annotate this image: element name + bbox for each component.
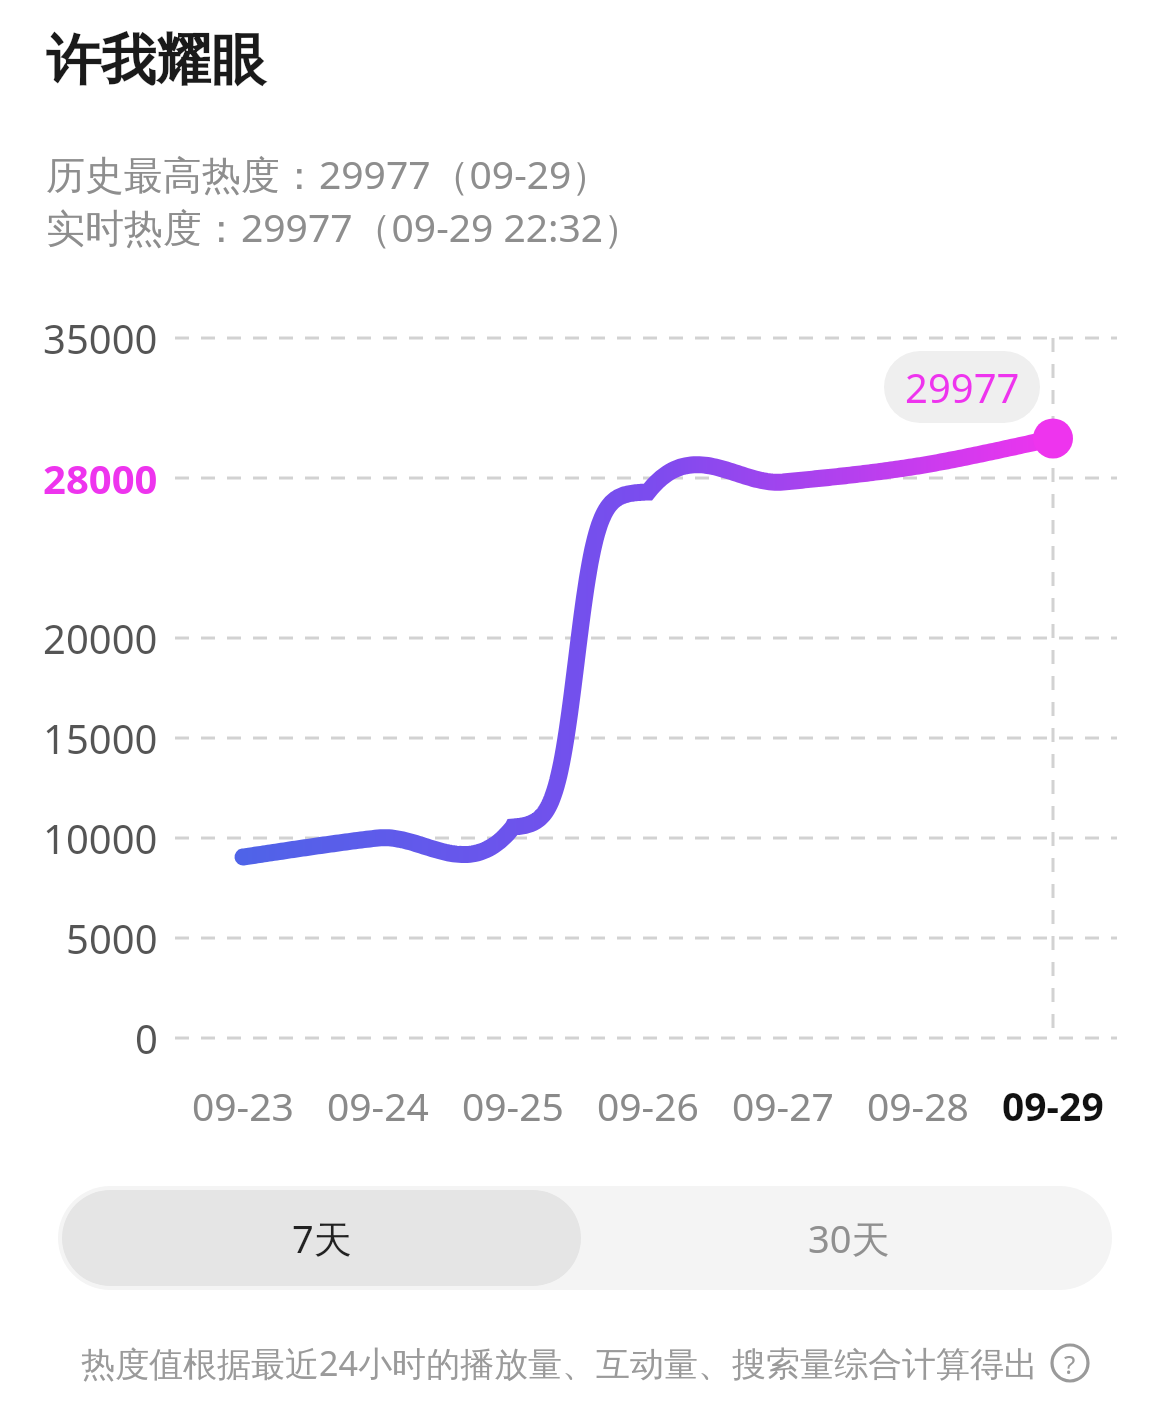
staticText: 0 <box>135 1011 158 1065</box>
staticText: 历史最高热度：29977（09-29） <box>46 147 611 200</box>
button[interactable]: 7天 <box>62 1190 581 1286</box>
staticText: 7天 <box>292 1212 352 1264</box>
button[interactable]: 说明 <box>1050 1343 1090 1383</box>
staticText: 28000 <box>43 451 158 505</box>
staticText: 5000 <box>66 911 158 965</box>
staticText: 09-29 <box>1002 1079 1104 1132</box>
staticText: 10000 <box>43 811 158 865</box>
staticText: 20000 <box>43 611 158 665</box>
staticText: ? <box>1064 1346 1076 1381</box>
staticText: 09-23 <box>192 1079 294 1132</box>
staticText: 30天 <box>808 1212 890 1264</box>
staticText: 许我耀眼 <box>46 26 266 95</box>
staticText: 09-28 <box>867 1079 969 1132</box>
staticText: 09-25 <box>462 1079 564 1132</box>
button[interactable]: 30天 <box>585 1186 1112 1290</box>
staticText: 09-26 <box>597 1079 699 1132</box>
staticText: 09-27 <box>732 1079 834 1132</box>
staticText: 实时热度：29977（09-29 22:32） <box>46 200 643 253</box>
staticText: 29977 <box>905 360 1020 414</box>
staticText: 热度值根据最近24小时的播放量、互动量、搜索量综合计算得出 <box>81 1340 1038 1386</box>
staticText: 09-24 <box>327 1079 429 1132</box>
staticText: 15000 <box>43 711 158 765</box>
staticText: 35000 <box>43 311 158 365</box>
